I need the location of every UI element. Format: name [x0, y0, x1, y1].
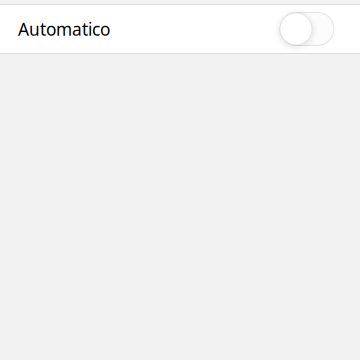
button[interactable]: Automatico [0, 5, 360, 53]
staticText: Automatico [18, 17, 110, 40]
